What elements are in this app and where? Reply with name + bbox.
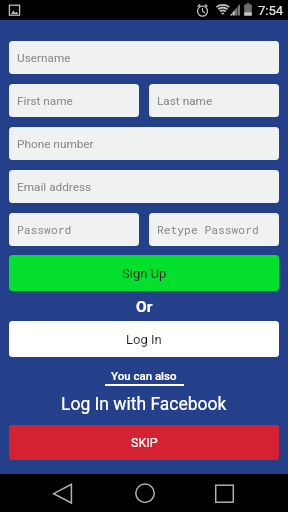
button[interactable]: First name bbox=[9, 84, 139, 117]
button[interactable]: Username bbox=[9, 41, 279, 74]
button[interactable]: Home bbox=[104, 474, 185, 512]
staticText: SKIP bbox=[131, 435, 158, 450]
button[interactable]: Recent apps bbox=[184, 474, 265, 512]
button[interactable]: Back bbox=[22, 474, 103, 512]
button[interactable]: Password bbox=[9, 213, 139, 246]
button[interactable]: Log In with Facebook bbox=[9, 394, 279, 415]
staticText: Retype Password bbox=[157, 222, 259, 237]
staticText: You can also bbox=[111, 369, 177, 382]
button[interactable]: SKIP bbox=[9, 425, 279, 460]
staticText: Last name bbox=[157, 94, 213, 108]
staticText: Username bbox=[17, 51, 71, 65]
button[interactable]: Phone number bbox=[9, 127, 279, 160]
staticText: First name bbox=[17, 94, 73, 108]
staticText: Log In with Facebook bbox=[61, 394, 227, 415]
button[interactable]: You can also bbox=[9, 369, 279, 386]
staticText: Phone number bbox=[17, 137, 94, 151]
button[interactable]: Sign Up bbox=[9, 255, 279, 291]
staticText: 7:54 bbox=[258, 3, 284, 18]
staticText: Or bbox=[136, 298, 153, 316]
staticText: Log In bbox=[126, 332, 162, 347]
button[interactable]: Retype Password bbox=[149, 213, 279, 246]
button[interactable]: Last name bbox=[149, 84, 279, 117]
button[interactable]: Email address bbox=[9, 170, 279, 203]
button[interactable]: Log In bbox=[9, 321, 279, 357]
staticText: Sign Up bbox=[122, 266, 167, 281]
staticText: Password bbox=[17, 222, 72, 237]
staticText: Email address bbox=[17, 180, 92, 194]
